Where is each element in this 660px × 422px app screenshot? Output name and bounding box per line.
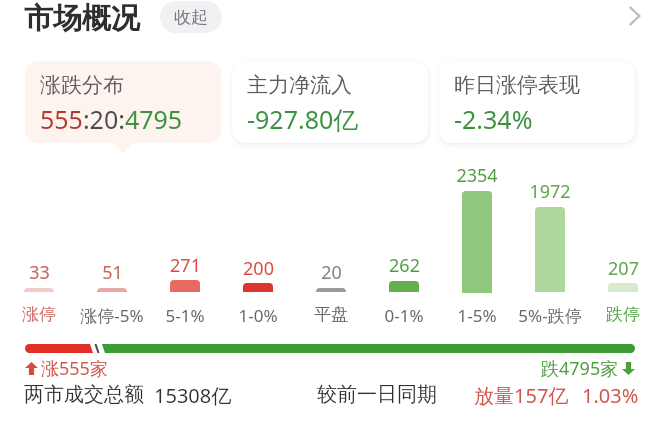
staticText: 1972 xyxy=(529,179,571,204)
staticText: 市场概况 xyxy=(24,0,140,37)
staticText: 跌4795家 xyxy=(541,356,619,381)
staticText: 15308亿 xyxy=(154,382,232,406)
staticText: 涨停-5% xyxy=(80,304,144,327)
staticText: -2.34% xyxy=(454,102,533,136)
staticText: 2354 xyxy=(456,163,498,188)
staticText: 555:20:4795 xyxy=(40,102,183,136)
staticText: 262 xyxy=(389,253,420,278)
staticText: 1.03% xyxy=(582,382,639,406)
staticText: 涨555家 xyxy=(41,356,108,381)
button[interactable]: 主力净流入 xyxy=(232,61,428,143)
staticText: 51 xyxy=(102,260,123,285)
button[interactable]: 昨日涨停表现 xyxy=(439,61,635,143)
staticText: 33 xyxy=(29,260,50,285)
staticText: 5%-跌停 xyxy=(518,304,582,327)
staticText: 跌停 xyxy=(606,304,640,325)
staticText: 5-1% xyxy=(165,304,205,327)
staticText: 207 xyxy=(608,256,639,281)
staticText: 昨日涨停表现 xyxy=(454,72,580,98)
staticText: 主力净流入 xyxy=(247,72,352,98)
staticText: 涨停 xyxy=(22,304,56,325)
staticText: 200 xyxy=(243,256,274,281)
staticText: 收起 xyxy=(174,7,208,28)
staticText: 两市成交总额 xyxy=(24,382,144,406)
staticText: 1-0% xyxy=(238,304,278,327)
staticText: 0-1% xyxy=(384,304,424,327)
button[interactable]: More xyxy=(618,1,652,31)
staticText: 271 xyxy=(170,253,201,278)
button[interactable]: 收起 xyxy=(160,1,222,33)
staticText: 放量157亿 xyxy=(474,382,569,406)
staticText: 20 xyxy=(321,260,342,285)
staticText: 平盘 xyxy=(314,304,348,325)
staticText: -927.80亿 xyxy=(247,102,359,136)
button[interactable]: 涨跌分布 xyxy=(25,61,221,143)
staticText: 涨跌分布 xyxy=(40,72,124,98)
button[interactable]: 市场概况 xyxy=(24,0,140,37)
staticText: 1-5% xyxy=(457,304,497,327)
staticText: 较前一日同期 xyxy=(317,382,437,406)
